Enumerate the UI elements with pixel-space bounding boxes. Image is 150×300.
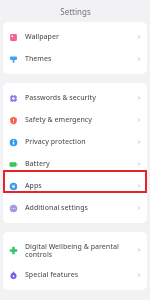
button[interactable]: Battery [3, 153, 147, 175]
button[interactable]: Special features [3, 264, 147, 286]
button[interactable]: Wallpaper [3, 26, 147, 48]
button[interactable]: Safety & emergency [3, 109, 147, 131]
button[interactable]: Additional settings [3, 197, 147, 219]
staticText: Wallpaper [25, 32, 133, 42]
staticText: Themes [25, 54, 133, 64]
button[interactable]: Apps [3, 175, 147, 197]
button[interactable]: Passwords & security [3, 87, 147, 109]
staticText: Apps [25, 181, 133, 191]
staticText: Special features [25, 270, 133, 280]
staticText: Battery [25, 159, 133, 169]
staticText: Safety & emergency [25, 115, 133, 125]
staticText: Privacy protection [25, 137, 133, 147]
staticText: Additional settings [25, 203, 133, 213]
button[interactable]: Privacy protection [3, 131, 147, 153]
button[interactable]: Themes [3, 48, 147, 70]
button[interactable]: Digital Wellbeing & parental controls [3, 236, 147, 264]
staticText: Settings [60, 6, 91, 17]
staticText: Digital Wellbeing & parental controls [25, 242, 133, 259]
staticText: Passwords & security [25, 93, 133, 103]
